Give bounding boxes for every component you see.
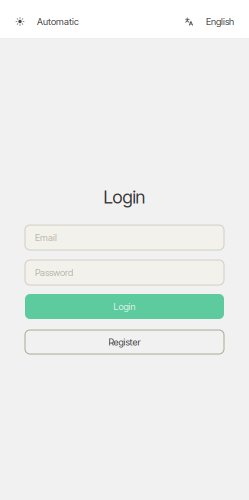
button[interactable]: Register	[25, 330, 224, 354]
staticText: Automatic	[37, 16, 79, 27]
button[interactable]: Email	[25, 225, 224, 250]
button[interactable]: English	[185, 7, 234, 35]
staticText: Login	[113, 301, 135, 312]
staticText: English	[206, 16, 234, 27]
button[interactable]: Login	[25, 294, 224, 319]
staticText: Email	[35, 232, 57, 243]
button[interactable]: Password	[25, 260, 224, 285]
button[interactable]: Automatic	[16, 7, 79, 35]
staticText: Register	[108, 336, 140, 348]
staticText: Login	[103, 186, 145, 208]
staticText: Password	[35, 267, 73, 278]
